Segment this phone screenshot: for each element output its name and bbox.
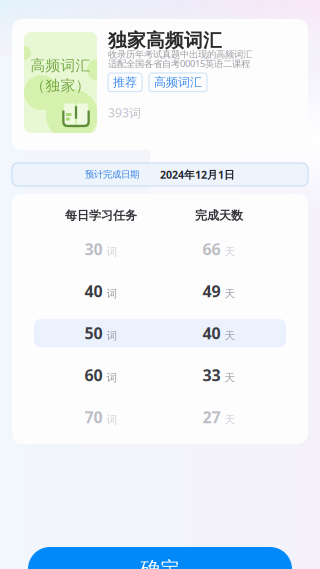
staticText: 收录历年考试真题中出现的高频词汇 bbox=[108, 49, 252, 60]
staticText: 词 bbox=[106, 287, 117, 300]
button[interactable]: 60 bbox=[34, 361, 286, 389]
button[interactable]: 预计完成日期 bbox=[12, 163, 308, 186]
staticText: 每日学习任务 bbox=[65, 208, 137, 223]
staticText: 66 bbox=[202, 238, 220, 260]
staticText: 天 bbox=[224, 245, 235, 258]
staticText: 393词 bbox=[108, 105, 141, 121]
staticText: 高频词汇 bbox=[154, 75, 202, 90]
staticText: 天 bbox=[224, 413, 235, 426]
staticText: 词 bbox=[106, 371, 117, 384]
button[interactable]: 50 bbox=[34, 319, 286, 347]
staticText: 天 bbox=[224, 287, 235, 300]
staticText: 高频词汇 bbox=[30, 56, 90, 74]
button[interactable]: 30 bbox=[34, 235, 286, 263]
staticText: 40 bbox=[202, 322, 220, 344]
staticText: 40 bbox=[84, 280, 102, 302]
staticText: 30 bbox=[84, 238, 102, 260]
staticText: 词 bbox=[106, 329, 117, 342]
staticText: 完成天数 bbox=[195, 208, 243, 223]
staticText: 70 bbox=[84, 406, 102, 428]
staticText: 33 bbox=[202, 364, 220, 386]
staticText: 词 bbox=[106, 245, 117, 258]
button[interactable]: 70 bbox=[34, 403, 286, 431]
staticText: 独家高频词汇 bbox=[108, 29, 222, 52]
button[interactable]: 40 bbox=[34, 277, 286, 305]
staticText: 2024年12月1日 bbox=[160, 167, 235, 182]
staticText: 适配全国各省自考00015英语二课程 bbox=[108, 57, 250, 70]
staticText: 天 bbox=[224, 371, 235, 384]
staticText: 50 bbox=[84, 322, 102, 344]
staticText: 天 bbox=[224, 329, 235, 342]
staticText: 词 bbox=[106, 413, 117, 426]
staticText: 60 bbox=[84, 364, 102, 386]
staticText: 27 bbox=[202, 406, 220, 428]
staticText: 推荐 bbox=[113, 75, 137, 90]
staticText: （独家） bbox=[30, 76, 90, 94]
staticText: 预计完成日期 bbox=[85, 169, 139, 180]
staticText: 49 bbox=[202, 280, 220, 302]
button[interactable]: 确定 bbox=[28, 547, 292, 569]
staticText: 确定 bbox=[140, 557, 180, 569]
